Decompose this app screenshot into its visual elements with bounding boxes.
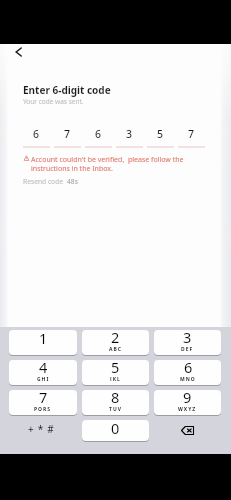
- button[interactable]: Symbols: [9, 420, 77, 441]
- button[interactable]: 9: [154, 390, 221, 415]
- staticText: +*#: [28, 422, 58, 436]
- button[interactable]: Back: [8, 44, 30, 64]
- button[interactable]: 6: [85, 127, 112, 148]
- staticText: 2: [111, 330, 120, 347]
- button[interactable]: Resend code: [23, 177, 78, 186]
- staticText: 48s: [67, 177, 78, 186]
- button[interactable]: 6: [23, 127, 50, 148]
- button[interactable]: 2: [82, 330, 149, 355]
- staticText: 5: [111, 360, 120, 377]
- button[interactable]: 3: [154, 330, 221, 355]
- staticText: 7: [64, 127, 71, 141]
- staticText: 3: [183, 330, 192, 347]
- staticText: 1: [39, 330, 48, 348]
- button[interactable]: 0: [82, 420, 149, 441]
- staticText: 0: [111, 420, 120, 438]
- staticText: 6: [33, 127, 40, 141]
- button[interactable]: 6: [154, 360, 221, 385]
- button[interactable]: 1: [9, 330, 77, 355]
- staticText: 4: [39, 360, 48, 377]
- button[interactable]: 8: [82, 390, 149, 415]
- staticText: 8: [111, 390, 120, 407]
- staticText: 9: [183, 390, 192, 407]
- button[interactable]: 7: [54, 127, 81, 148]
- button[interactable]: 7: [9, 390, 77, 415]
- staticText: 6: [184, 360, 193, 377]
- button[interactable]: 3: [116, 127, 143, 148]
- staticText: Account couldn't be verified, please fol…: [31, 155, 191, 173]
- button[interactable]: 4: [9, 360, 77, 385]
- staticText: WXYZ: [178, 406, 197, 411]
- staticText: ABC: [109, 346, 122, 351]
- staticText: 3: [126, 127, 133, 141]
- staticText: 5: [157, 127, 164, 141]
- staticText: GHI: [37, 376, 50, 381]
- staticText: 7: [39, 390, 48, 407]
- button[interactable]: 5: [82, 360, 149, 385]
- button[interactable]: 5: [147, 127, 174, 148]
- staticText: TUV: [109, 406, 122, 411]
- staticText: Your code was sent.: [23, 97, 84, 106]
- staticText: MNO: [180, 376, 196, 381]
- staticText: Enter 6-digit code: [23, 83, 111, 97]
- staticText: Resend code: [23, 177, 64, 186]
- staticText: 7: [188, 127, 195, 141]
- staticText: 6: [95, 127, 102, 141]
- staticText: PQRS: [34, 406, 52, 411]
- button[interactable]: 7: [178, 127, 205, 148]
- button[interactable]: Delete: [154, 420, 221, 441]
- staticText: DEF: [181, 346, 194, 351]
- staticText: JKL: [110, 376, 121, 381]
